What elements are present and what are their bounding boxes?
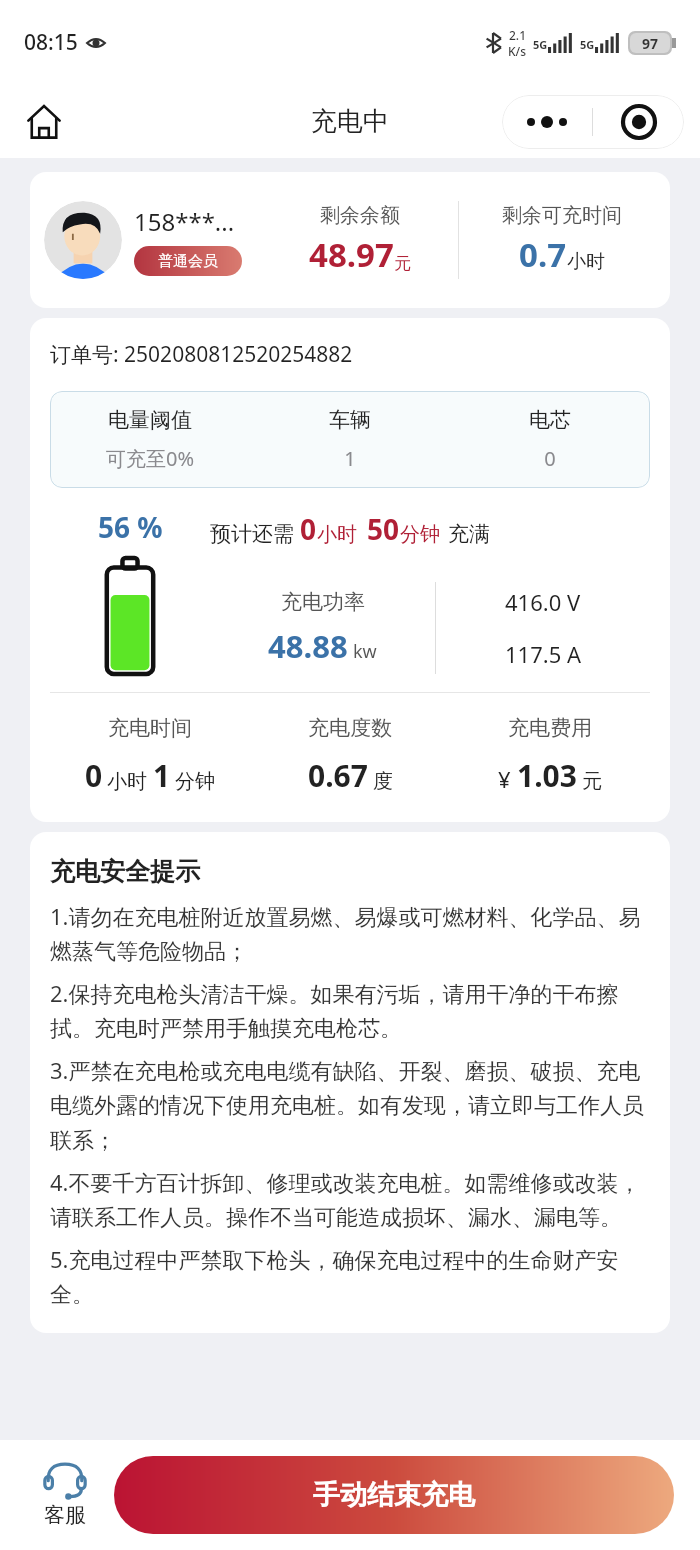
staticText: 分钟 xyxy=(175,769,215,794)
staticText: 5G xyxy=(580,37,595,52)
staticText: 158***... xyxy=(134,205,235,238)
staticText: kw xyxy=(353,639,377,664)
staticText: 1.03 xyxy=(517,755,577,796)
staticText: 50 xyxy=(367,510,400,548)
staticText: 电量阈值 xyxy=(50,407,250,433)
staticText: 充电安全提示 xyxy=(50,856,200,887)
staticText: 剩余余额 xyxy=(320,203,400,228)
staticText: 97 xyxy=(642,34,659,53)
staticText: 56 % xyxy=(98,508,163,546)
button[interactable]: Home xyxy=(18,96,70,148)
staticText: 2.1 xyxy=(509,27,526,43)
staticText: 5G xyxy=(533,37,548,52)
button[interactable]: Close xyxy=(593,95,684,149)
staticText: 小时 xyxy=(567,250,605,274)
staticText: 元 xyxy=(394,253,411,274)
staticText: 剩余可充时间 xyxy=(502,203,622,228)
staticText: 普通会员 xyxy=(158,252,218,271)
staticText: 订单号: 2502080812520254882 xyxy=(50,340,353,369)
staticText: 度 xyxy=(373,769,393,794)
staticText: 4.不要千方百计拆卸、修理或改装充电桩。如需维修或改装，请联系工作人员。操作不当… xyxy=(50,1167,650,1232)
staticText: 预计还需 xyxy=(210,519,300,548)
staticText: 0 xyxy=(85,755,103,796)
staticText: 1 xyxy=(250,445,450,472)
staticText: 117.5 A xyxy=(505,639,582,669)
staticText: 可充至0% xyxy=(50,445,250,472)
staticText: 分钟 xyxy=(400,522,440,547)
staticText: 客服 xyxy=(44,1502,86,1528)
staticText: 手动结束充电 xyxy=(313,1478,475,1512)
button[interactable]: 客服 xyxy=(24,1440,106,1550)
staticText: 416.0 V xyxy=(505,587,581,617)
staticText: 小时 xyxy=(107,769,147,794)
staticText: 08:15 xyxy=(24,28,78,57)
button[interactable]: 158***... xyxy=(30,172,670,308)
staticText: 元 xyxy=(582,769,602,794)
staticText: 充电中 xyxy=(311,105,389,138)
staticText: 充电功率 xyxy=(281,589,365,615)
staticText: 充电度数 xyxy=(250,715,450,741)
staticText: 充满 xyxy=(448,521,490,547)
staticText: 48.88 xyxy=(268,625,348,667)
staticText: 3.严禁在充电枪或充电电缆有缺陷、开裂、磨损、破损、充电电缆外露的情况下使用充电… xyxy=(50,1055,650,1155)
staticText: 0.7 xyxy=(519,232,567,277)
staticText: 车辆 xyxy=(250,407,450,433)
staticText: 2.保持充电枪头清洁干燥。如果有污垢，请用干净的干布擦拭。充电时严禁用手触摸充电… xyxy=(50,978,650,1043)
staticText: 5.充电过程中严禁取下枪头，确保充电过程中的生命财产安全。 xyxy=(50,1244,650,1309)
staticText: K/s xyxy=(508,43,527,59)
staticText: 0.67 xyxy=(308,755,368,796)
staticText: 0 xyxy=(300,510,317,548)
button[interactable]: 手动结束充电 xyxy=(114,1456,674,1534)
staticText: ¥ xyxy=(498,764,511,794)
staticText: 小时 xyxy=(317,522,357,547)
button[interactable]: More options xyxy=(502,95,592,149)
staticText: 1.请勿在充电桩附近放置易燃、易爆或可燃材料、化学品、易燃蒸气等危险物品； xyxy=(50,901,650,966)
staticText: 1 xyxy=(153,755,171,796)
staticText: 充电费用 xyxy=(450,715,650,741)
staticText: 48.97 xyxy=(309,232,394,277)
staticText: 充电时间 xyxy=(50,715,250,741)
staticText: 电芯 xyxy=(450,407,650,433)
staticText: 0 xyxy=(450,445,650,472)
